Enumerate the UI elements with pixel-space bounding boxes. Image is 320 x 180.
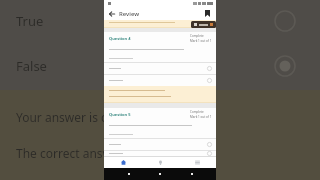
staticText: Complete <box>190 34 204 38</box>
staticText: Question 5 <box>109 112 131 117</box>
button[interactable] <box>104 151 216 156</box>
button[interactable]: Back <box>122 168 136 180</box>
button[interactable] <box>104 139 216 150</box>
button[interactable] <box>104 63 216 74</box>
button[interactable]: Back <box>106 8 117 19</box>
button[interactable]: Recents <box>185 168 199 180</box>
button[interactable]: Notifications <box>142 157 179 168</box>
staticText: Mark 1 out of 1 <box>190 39 212 43</box>
button[interactable]: Bookmark <box>202 8 213 19</box>
button[interactable]: Home <box>104 157 142 168</box>
button[interactable]: Timer <box>194 23 213 26</box>
staticText: False <box>16 57 47 75</box>
staticText: Your answer is correct. <box>16 109 144 125</box>
button[interactable] <box>104 75 216 86</box>
staticText: The correct answer is 'F <box>16 145 148 161</box>
button[interactable]: Menu <box>179 157 216 168</box>
button[interactable]: Home <box>153 168 167 180</box>
staticText: True <box>16 12 44 30</box>
staticText: Mark 1 out of 1 <box>190 115 212 119</box>
staticText: Review <box>119 10 140 18</box>
staticText: Question 4 <box>109 36 131 41</box>
staticText: Complete <box>190 110 204 114</box>
